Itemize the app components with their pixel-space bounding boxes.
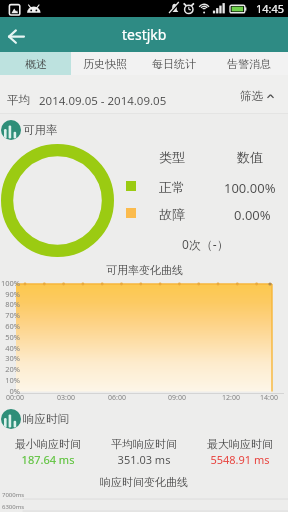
staticText: 每日统计 bbox=[152, 57, 196, 71]
staticText: 14:00 bbox=[255, 393, 283, 403]
staticText: 0.00% bbox=[234, 206, 271, 224]
staticText: 100% bbox=[0, 278, 20, 288]
staticText: 平均响应时间 bbox=[96, 437, 192, 451]
staticText: 告警消息 bbox=[227, 57, 271, 71]
staticText: 03:00 bbox=[52, 393, 80, 403]
staticText: 7000ms bbox=[2, 491, 25, 499]
staticText: 10% bbox=[0, 375, 20, 385]
staticText: 20% bbox=[0, 364, 20, 374]
staticText: 50% bbox=[0, 332, 20, 342]
staticText: 筛选 bbox=[240, 89, 263, 103]
staticText: 30% bbox=[0, 353, 20, 363]
staticText: 0% bbox=[0, 386, 20, 396]
staticText: 6300ms bbox=[2, 503, 25, 511]
staticText: 响应时间 bbox=[23, 412, 69, 426]
staticText: 06:00 bbox=[103, 393, 131, 403]
staticText: 最小响应时间 bbox=[0, 437, 96, 451]
staticText: 40% bbox=[0, 343, 20, 353]
staticText: 187.64 ms bbox=[0, 452, 96, 467]
staticText: 351.03 ms bbox=[96, 452, 192, 467]
staticText: 12:00 bbox=[217, 393, 245, 403]
staticText: testjkb bbox=[122, 25, 167, 44]
button[interactable]: 每日统计 bbox=[138, 52, 210, 75]
staticText: 09:00 bbox=[163, 393, 191, 403]
button[interactable]: 筛选 bbox=[238, 87, 276, 105]
staticText: 数值 bbox=[237, 149, 263, 165]
staticText: 70% bbox=[0, 310, 20, 320]
staticText: 最大响应时间 bbox=[192, 437, 288, 451]
staticText: 历史快照 bbox=[83, 57, 127, 71]
button[interactable]: 概述 bbox=[0, 52, 71, 75]
button[interactable]: Back bbox=[0, 18, 34, 52]
staticText: 00:00 bbox=[1, 393, 29, 403]
staticText: 类型 bbox=[159, 149, 185, 165]
staticText: 2014.09.05 - 2014.09.05 bbox=[39, 93, 167, 109]
staticText: 故障 bbox=[159, 206, 185, 222]
staticText: 可用率变化曲线 bbox=[106, 263, 183, 277]
staticText: 可用率 bbox=[23, 123, 58, 137]
staticText: 80% bbox=[0, 299, 20, 309]
staticText: 90% bbox=[0, 289, 20, 299]
staticText: 100.00% bbox=[224, 179, 276, 197]
staticText: 14:45 bbox=[256, 1, 285, 16]
staticText: 0次（-） bbox=[182, 236, 229, 252]
staticText: 概述 bbox=[25, 57, 47, 71]
staticText: 60% bbox=[0, 321, 20, 331]
button[interactable]: 告警消息 bbox=[210, 52, 288, 75]
button[interactable]: 历史快照 bbox=[71, 52, 138, 75]
staticText: 响应时间变化曲线 bbox=[100, 475, 188, 489]
staticText: 平均 bbox=[7, 93, 30, 107]
staticText: 5548.91 ms bbox=[192, 452, 288, 467]
staticText: 正常 bbox=[159, 179, 185, 195]
